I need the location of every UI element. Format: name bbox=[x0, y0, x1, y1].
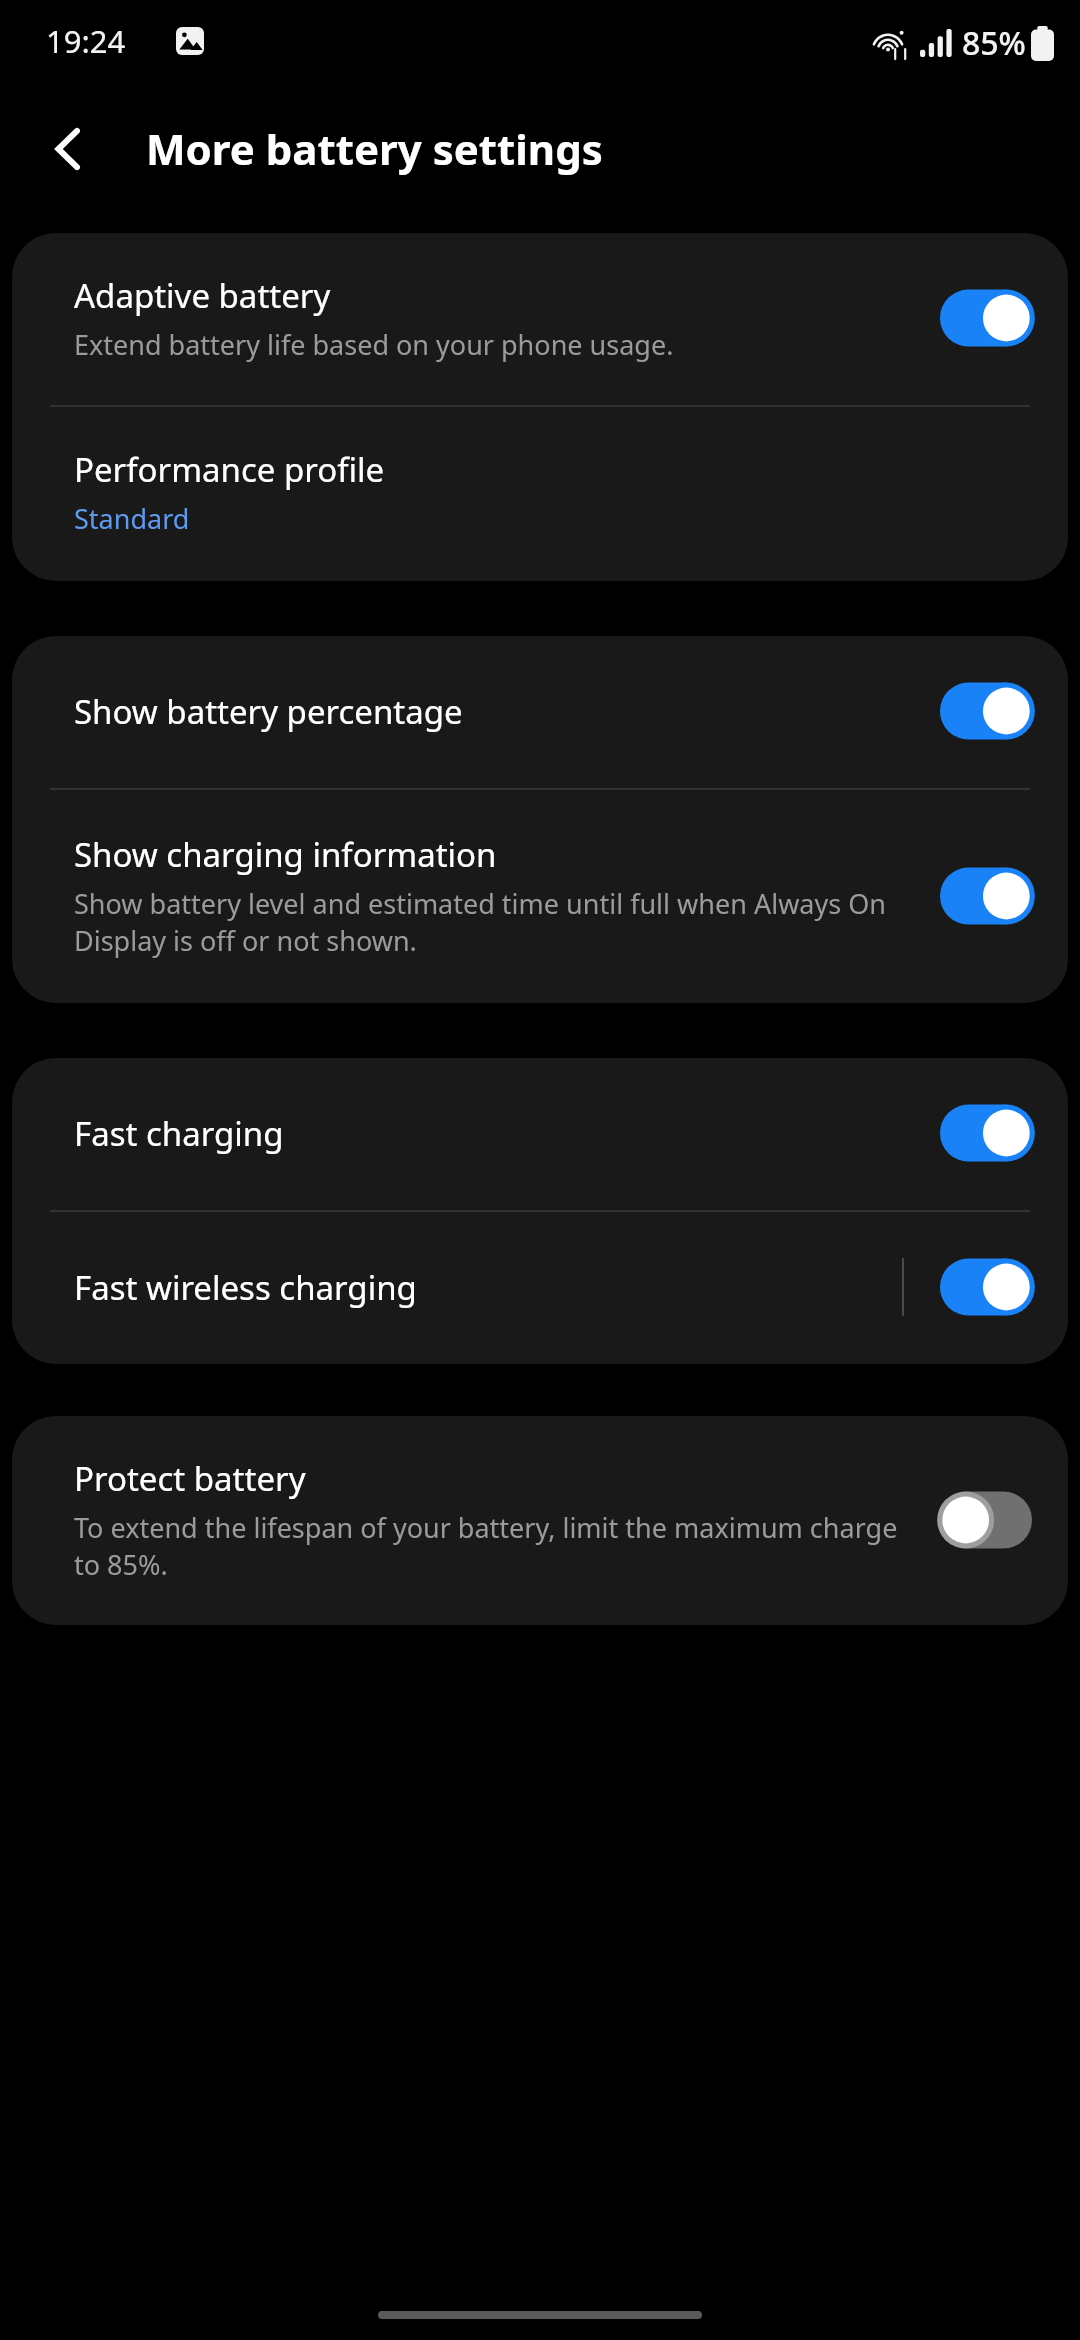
staticText: To extend the lifespan of your battery, … bbox=[74, 1509, 920, 1583]
button[interactable]: Switch on bbox=[936, 863, 1044, 929]
staticText: Show battery level and estimated time un… bbox=[74, 885, 920, 959]
staticText: Show charging information bbox=[74, 832, 497, 877]
staticText: More battery settings bbox=[146, 120, 603, 177]
staticText: Performance profile bbox=[74, 447, 385, 492]
staticText: Fast wireless charging bbox=[74, 1265, 417, 1310]
button[interactable]: Back bbox=[36, 117, 100, 181]
staticText: Standard bbox=[74, 500, 190, 537]
button[interactable]: Switch on bbox=[936, 1254, 1044, 1320]
button[interactable]: Fast charging bbox=[12, 1058, 1068, 1210]
button[interactable]: Switch on bbox=[936, 1100, 1044, 1166]
button[interactable]: Show battery percentage bbox=[12, 636, 1068, 788]
button[interactable]: Show charging information bbox=[12, 790, 1068, 1003]
button[interactable]: Protect battery bbox=[12, 1416, 1068, 1625]
button[interactable]: Switch off bbox=[936, 1487, 1044, 1553]
button[interactable]: Fast wireless charging bbox=[12, 1212, 1068, 1364]
staticText: 19:24 bbox=[46, 20, 126, 62]
staticText: Extend battery life based on your phone … bbox=[74, 326, 674, 363]
staticText: Adaptive battery bbox=[74, 273, 331, 318]
button[interactable]: Switch on bbox=[936, 678, 1044, 744]
staticText: Show battery percentage bbox=[74, 689, 463, 734]
button[interactable]: Performance profile bbox=[12, 407, 1068, 581]
staticText: Fast charging bbox=[74, 1111, 284, 1156]
staticText: 85% bbox=[962, 21, 1026, 65]
button[interactable]: Adaptive battery bbox=[12, 233, 1068, 405]
button[interactable]: Switch on bbox=[936, 285, 1044, 351]
staticText: Protect battery bbox=[74, 1456, 306, 1501]
